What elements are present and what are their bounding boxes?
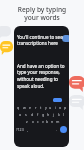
button[interactable]: x bbox=[30, 119, 35, 124]
button[interactable]: z bbox=[24, 119, 30, 124]
button[interactable]: j bbox=[51, 112, 56, 117]
button[interactable]: o bbox=[58, 105, 63, 110]
staticText: l bbox=[63, 112, 64, 117]
button[interactable]: n bbox=[50, 119, 55, 124]
button[interactable]: ?123 bbox=[15, 126, 25, 133]
button[interactable]: g bbox=[41, 112, 46, 117]
staticText: z bbox=[26, 119, 28, 124]
staticText: k bbox=[58, 112, 60, 117]
button[interactable]: h bbox=[46, 112, 51, 117]
button[interactable]: y bbox=[43, 105, 48, 110]
button[interactable]: p bbox=[63, 105, 68, 110]
staticText: ?123 bbox=[16, 127, 24, 132]
staticText: b bbox=[46, 119, 49, 124]
button[interactable]: w bbox=[21, 105, 27, 110]
button[interactable]: e bbox=[27, 105, 33, 110]
staticText: g bbox=[42, 112, 45, 117]
button[interactable]: l bbox=[61, 112, 66, 117]
button[interactable]: t bbox=[38, 105, 43, 110]
staticText: t bbox=[40, 105, 42, 110]
button[interactable]: s bbox=[23, 112, 29, 117]
button[interactable]: r bbox=[33, 105, 38, 110]
staticText: . bbox=[56, 127, 57, 132]
staticText: e bbox=[29, 105, 32, 110]
staticText: u bbox=[49, 105, 52, 110]
staticText: j bbox=[53, 112, 54, 117]
button[interactable]: i bbox=[53, 105, 58, 110]
staticText: a bbox=[19, 112, 22, 117]
button[interactable]: d bbox=[29, 112, 35, 117]
staticText: , bbox=[27, 127, 28, 132]
button[interactable]: m bbox=[55, 119, 60, 124]
staticText: And have an option to type your response… bbox=[17, 63, 65, 89]
staticText: m bbox=[56, 119, 60, 124]
button[interactable]: c bbox=[35, 119, 40, 124]
staticText: You'll continue to see transcriptions he… bbox=[17, 34, 63, 46]
staticText: h bbox=[47, 112, 50, 117]
staticText: w bbox=[23, 105, 26, 110]
button[interactable]: v bbox=[40, 119, 45, 124]
button[interactable]: b bbox=[45, 119, 50, 124]
staticText: x bbox=[32, 119, 34, 124]
button[interactable]: k bbox=[56, 112, 61, 117]
button[interactable]: a bbox=[17, 112, 23, 117]
button[interactable]: u bbox=[48, 105, 53, 110]
staticText: v bbox=[42, 119, 44, 124]
staticText: n bbox=[51, 119, 54, 124]
staticText: d bbox=[31, 112, 34, 117]
staticText: i bbox=[55, 105, 56, 110]
button[interactable]: Send bbox=[60, 126, 67, 133]
staticText: c bbox=[37, 119, 39, 124]
staticText: f bbox=[37, 112, 39, 117]
staticText: r bbox=[35, 105, 37, 110]
staticText: o bbox=[59, 105, 62, 110]
button[interactable]: f bbox=[35, 112, 41, 117]
staticText: y bbox=[45, 105, 47, 110]
staticText: s bbox=[25, 112, 27, 117]
button[interactable]: q bbox=[15, 105, 21, 110]
staticText: q bbox=[17, 105, 20, 110]
staticText: Reply by typing your words bbox=[0, 5, 84, 22]
button[interactable]: . bbox=[54, 126, 59, 133]
button[interactable]: , bbox=[25, 126, 30, 133]
staticText: p bbox=[64, 105, 67, 110]
